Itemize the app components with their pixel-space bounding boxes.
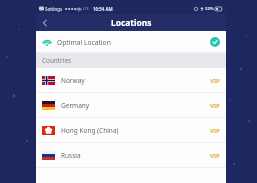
staticText: VIP [210, 77, 220, 85]
staticText: VIP [210, 127, 220, 135]
staticText: Settings [45, 6, 63, 12]
staticText: Locations [111, 17, 152, 28]
staticText: VIP [210, 102, 220, 110]
button[interactable]: Germany [36, 93, 226, 118]
staticText: LTE [83, 6, 89, 11]
staticText: 10:54 AM [93, 6, 113, 12]
button[interactable]: Hong Kong (China) [36, 118, 226, 143]
button[interactable]: Back [36, 14, 53, 31]
staticText: Countries [42, 56, 72, 65]
staticText: Russia [61, 151, 81, 160]
staticText: Hong Kong (China) [61, 126, 119, 135]
staticText: Optimal Location [57, 38, 111, 47]
button[interactable]: Russia [36, 143, 226, 168]
staticText: 32% [205, 6, 214, 12]
staticText: VIP [210, 152, 220, 160]
staticText: Norway [61, 76, 85, 85]
button[interactable]: Norway [36, 68, 226, 93]
button[interactable]: Optimal Location [36, 31, 226, 53]
staticText: Germany [61, 101, 90, 110]
